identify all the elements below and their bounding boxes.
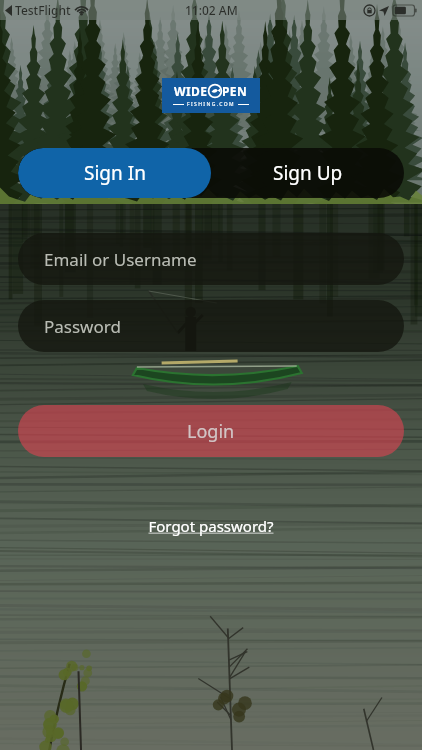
button[interactable]: Forgot password? [138, 512, 284, 540]
staticText: Forgot password? [148, 516, 274, 536]
staticText: FISHING.COM [187, 101, 235, 108]
staticText: WIDE [174, 83, 208, 99]
button[interactable]: Sign Up [211, 148, 404, 198]
staticText: Login [187, 419, 235, 444]
staticText: Sign Up [273, 160, 343, 186]
staticText: Sign In [84, 160, 146, 186]
button[interactable]: Sign In [18, 148, 211, 198]
staticText: 11:02 AM [185, 2, 238, 18]
staticText: TestFlight [15, 2, 71, 18]
button[interactable]: Login [18, 405, 404, 457]
staticText: PEN [222, 83, 248, 99]
button[interactable]: Email or Username [18, 233, 404, 285]
staticText: Email or Username [44, 248, 197, 271]
button[interactable]: Password [18, 300, 404, 352]
staticText: Password [44, 315, 121, 338]
